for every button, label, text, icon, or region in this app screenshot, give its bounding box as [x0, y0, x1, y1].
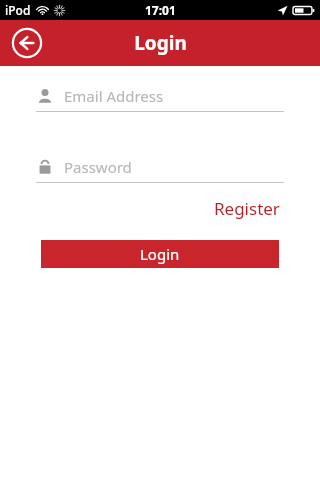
staticText: Register [214, 197, 280, 220]
button[interactable]: Email Address [36, 86, 284, 112]
staticText: Login [140, 244, 180, 264]
staticText: Password [64, 157, 132, 177]
button[interactable]: Back [11, 27, 43, 59]
button[interactable]: Register [174, 193, 320, 224]
staticText: iPod [5, 2, 31, 18]
staticText: Email Address [64, 86, 164, 106]
button[interactable]: Password [36, 157, 284, 183]
staticText: 17:01 [145, 2, 176, 18]
staticText: Login [134, 30, 187, 56]
button[interactable]: Login [41, 240, 279, 268]
